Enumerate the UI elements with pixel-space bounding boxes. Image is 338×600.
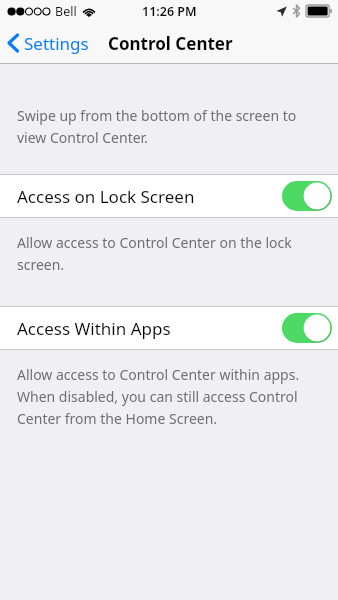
button[interactable]: Toggle (282, 181, 332, 211)
button[interactable]: Settings (0, 22, 97, 64)
button[interactable]: Toggle (282, 313, 332, 343)
staticText: When disabled, you can still access Cont… (17, 387, 298, 406)
staticText: view Control Center. (17, 128, 148, 147)
staticText: Bell (55, 3, 77, 20)
staticText: Swipe up from the bottom of the screen t… (17, 106, 297, 125)
staticText: Access Within Apps (17, 317, 171, 340)
staticText: Control Center (108, 32, 233, 55)
staticText: 11:26 PM (142, 3, 197, 20)
button[interactable]: Access on Lock Screen (0, 175, 338, 217)
staticText: Allow access to Control Center within ap… (17, 365, 300, 384)
staticText: Allow access to Control Center on the lo… (17, 233, 292, 252)
button[interactable]: Access Within Apps (0, 307, 338, 349)
staticText: Center from the Home Screen. (17, 409, 218, 428)
staticText: Access on Lock Screen (17, 185, 195, 208)
staticText: Settings (24, 32, 89, 55)
staticText: screen. (17, 255, 65, 274)
